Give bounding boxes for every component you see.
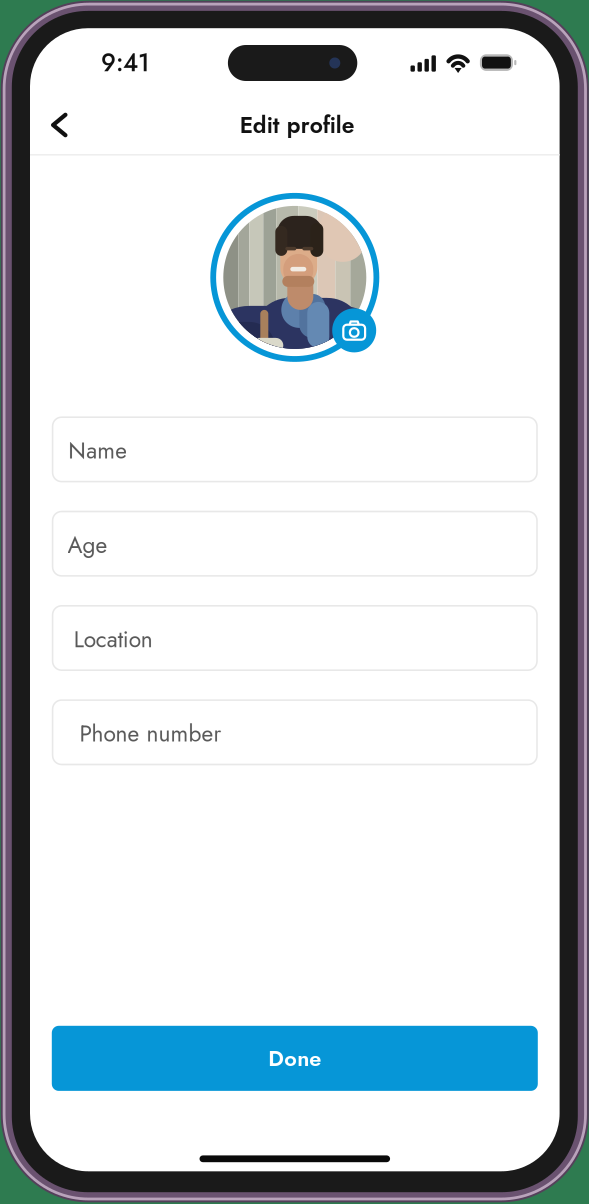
staticText: Phone number [79,717,221,750]
button[interactable]: Age [52,511,538,577]
staticText: Age [68,529,108,561]
staticText: Edit profile [240,109,355,142]
button[interactable]: Name [52,416,538,482]
staticText: Location [74,623,153,656]
staticText: Name [68,434,127,467]
button[interactable]: Back [30,96,84,154]
button[interactable]: Done [52,1026,538,1091]
staticText: Done [268,1043,321,1074]
button[interactable]: Phone number [52,699,538,765]
button[interactable]: Location [52,605,538,671]
staticText: 9:41 [101,45,150,80]
button[interactable]: Change photo [332,308,376,352]
